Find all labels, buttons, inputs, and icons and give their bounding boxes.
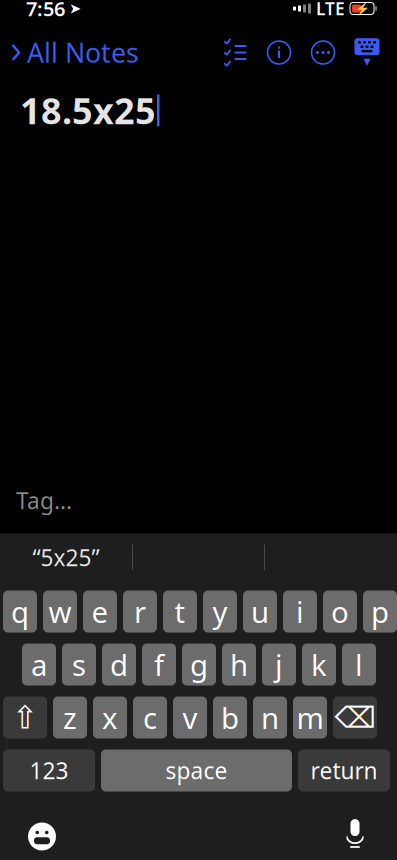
button[interactable]: Checklist: [213, 34, 257, 70]
staticText: m: [296, 698, 323, 737]
staticText: ➤: [69, 0, 81, 17]
button[interactable]: More: [301, 34, 345, 70]
button[interactable]: Delete: [333, 696, 377, 738]
button[interactable]: Hide Keyboard: [345, 34, 389, 70]
staticText: return: [310, 755, 377, 785]
button[interactable]: f: [142, 643, 176, 685]
button[interactable]: j: [262, 643, 296, 685]
button[interactable]: x: [93, 696, 127, 738]
button[interactable]: v: [173, 696, 207, 738]
button[interactable]: e: [83, 590, 117, 632]
staticText: z: [63, 698, 77, 737]
staticText: p: [371, 592, 389, 631]
button[interactable]: Shift: [3, 696, 47, 738]
button[interactable]: d: [102, 643, 136, 685]
staticText: n: [261, 698, 279, 737]
staticText: Tag...: [16, 485, 72, 515]
staticText: ⚡: [354, 2, 369, 15]
button[interactable]: k: [302, 643, 336, 685]
button[interactable]: s: [62, 643, 96, 685]
staticText: 123: [29, 755, 68, 785]
staticText: space: [165, 755, 227, 785]
button[interactable]: space: [101, 749, 292, 791]
staticText: u: [251, 592, 269, 631]
button[interactable]: c: [133, 696, 167, 738]
staticText: t: [174, 592, 185, 631]
staticText: “5x25”: [32, 542, 99, 572]
staticText: o: [331, 592, 349, 631]
staticText: ▼: [363, 56, 370, 67]
staticText: LTE: [316, 0, 345, 20]
button[interactable]: return: [298, 749, 390, 791]
button[interactable]: “5x25”: [0, 535, 132, 579]
staticText: a: [31, 645, 47, 684]
staticText: f: [154, 645, 164, 684]
button[interactable]: Dictation: [331, 814, 379, 858]
button[interactable]: a: [22, 643, 56, 685]
staticText: x: [102, 698, 118, 737]
button[interactable]: n: [253, 696, 287, 738]
button[interactable]: q: [3, 590, 37, 632]
staticText: i: [296, 592, 304, 631]
button[interactable]: All Notes: [0, 29, 139, 76]
staticText: ⌫: [334, 701, 375, 734]
button[interactable]: l: [342, 643, 376, 685]
staticText: v: [182, 698, 197, 737]
staticText: l: [355, 645, 363, 684]
button[interactable]: g: [182, 643, 216, 685]
button[interactable]: i: [283, 590, 317, 632]
button[interactable]: r: [123, 590, 157, 632]
staticText: ⇧: [11, 699, 38, 736]
button[interactable]: 123: [3, 749, 95, 791]
staticText: w: [48, 592, 71, 631]
staticText: h: [230, 645, 248, 684]
staticText: k: [311, 645, 327, 684]
button[interactable]: Emoji: [18, 814, 66, 858]
button[interactable]: b: [213, 696, 247, 738]
staticText: All Notes: [27, 35, 139, 70]
button[interactable]: y: [203, 590, 237, 632]
staticText: r: [134, 592, 146, 631]
staticText: j: [275, 645, 283, 684]
button[interactable]: o: [323, 590, 357, 632]
button[interactable]: t: [163, 590, 197, 632]
staticText: e: [91, 592, 108, 631]
staticText: s: [72, 645, 86, 684]
button[interactable]: m: [293, 696, 327, 738]
button[interactable]: z: [53, 696, 87, 738]
staticText: q: [11, 592, 29, 631]
button[interactable]: Info: [257, 34, 301, 70]
staticText: y: [212, 592, 227, 631]
staticText: 7:56: [26, 0, 65, 22]
button[interactable]: p: [363, 590, 397, 632]
staticText: 18.5x25: [20, 86, 156, 134]
button[interactable]: u: [243, 590, 277, 632]
staticText: b: [221, 698, 239, 737]
staticText: g: [190, 645, 208, 684]
button[interactable]: w: [43, 590, 77, 632]
button[interactable]: h: [222, 643, 256, 685]
staticText: d: [110, 645, 128, 684]
staticText: c: [143, 698, 157, 737]
